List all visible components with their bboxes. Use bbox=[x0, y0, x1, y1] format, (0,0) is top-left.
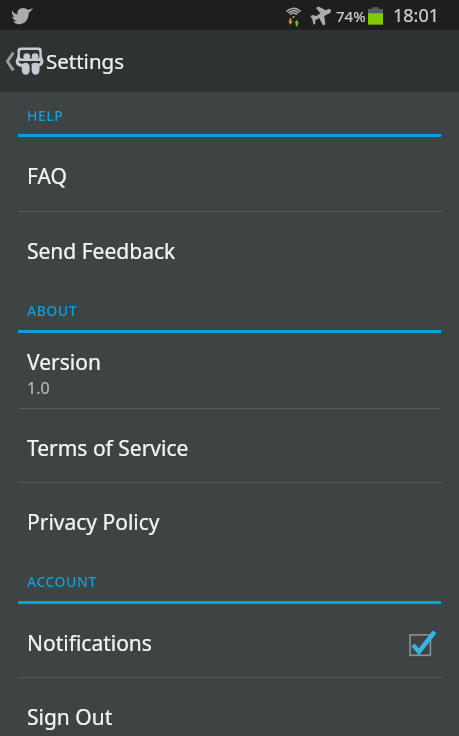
staticText: Notifications bbox=[27, 629, 152, 658]
staticText: Sign Out bbox=[27, 703, 113, 732]
staticText: FAQ bbox=[27, 162, 67, 191]
staticText: HELP bbox=[27, 106, 64, 125]
staticText: Settings bbox=[46, 47, 125, 75]
staticText: Terms of Service bbox=[27, 434, 189, 463]
staticText: Version bbox=[27, 348, 101, 377]
staticText: 18:01 bbox=[393, 3, 440, 28]
staticText: 1.0 bbox=[27, 377, 50, 399]
button[interactable]: Version bbox=[0, 333, 459, 409]
button[interactable]: Navigate up bbox=[0, 30, 46, 92]
staticText: Send Feedback bbox=[27, 237, 176, 266]
button[interactable]: Notifications bbox=[0, 604, 459, 678]
button[interactable]: FAQ bbox=[0, 137, 459, 212]
button[interactable]: Terms of Service bbox=[0, 409, 459, 483]
button[interactable]: Send Feedback bbox=[0, 212, 459, 287]
button[interactable]: Notifications enabled bbox=[407, 628, 437, 658]
staticText: 74% bbox=[336, 6, 366, 26]
button[interactable]: Sign Out bbox=[0, 678, 459, 736]
staticText: ACCOUNT bbox=[27, 572, 97, 591]
staticText: Privacy Policy bbox=[27, 508, 160, 537]
staticText: ABOUT bbox=[27, 301, 78, 320]
button[interactable]: Privacy Policy bbox=[0, 483, 459, 558]
